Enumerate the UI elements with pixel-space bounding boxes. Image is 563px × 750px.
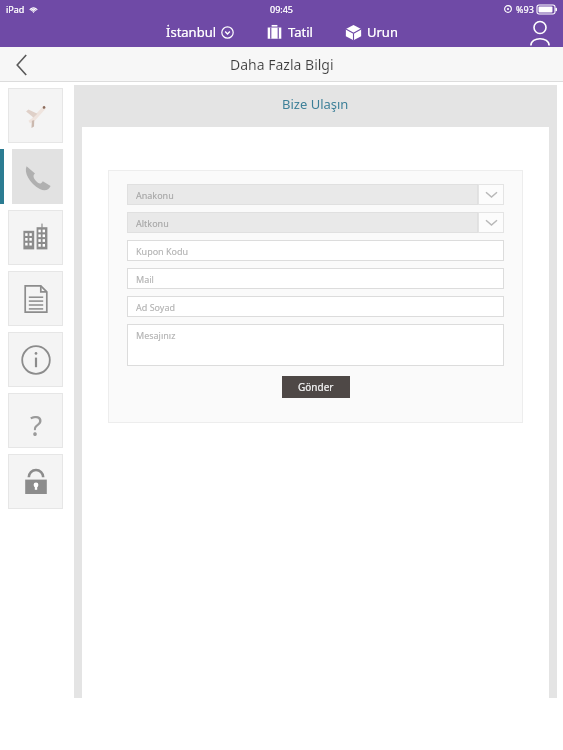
staticText: Kupon Kodu (136, 245, 189, 257)
staticText: Altkonu (136, 217, 169, 229)
staticText: Urun (367, 23, 398, 41)
button[interactable]: Mesajınız (127, 324, 504, 366)
button[interactable]: ? (8, 393, 63, 448)
staticText: 09:45 (270, 3, 294, 15)
staticText: Anakonu (136, 189, 174, 201)
button[interactable]: Gönder (282, 376, 350, 398)
button[interactable]: İstanbul (160, 20, 240, 44)
button[interactable]: Urun (339, 20, 404, 44)
button[interactable] (8, 210, 63, 265)
button[interactable] (8, 332, 63, 387)
button[interactable]: Ad Soyad (127, 296, 504, 317)
staticText: Ad Soyad (136, 301, 176, 313)
staticText: Mesajınız (136, 329, 176, 341)
staticText: %93 (516, 3, 534, 15)
staticText: ? (30, 406, 43, 436)
staticText: Daha Fazla Bilgi (230, 55, 334, 74)
button[interactable] (8, 149, 63, 204)
button[interactable]: Back (0, 47, 44, 82)
staticText: iPad (6, 3, 25, 15)
staticText: İstanbul (166, 23, 217, 41)
button[interactable]: Kupon Kodu (127, 240, 504, 261)
button[interactable] (8, 454, 63, 509)
button[interactable] (8, 271, 63, 326)
button[interactable]: Anakonu (127, 184, 504, 205)
button[interactable]: Account (525, 17, 555, 47)
button[interactable]: Tatil (260, 20, 319, 44)
button[interactable]: Mail (127, 268, 504, 289)
staticText: Tatil (288, 23, 313, 41)
staticText: Mail (136, 273, 154, 285)
staticText: Bize Ulaşın (282, 95, 349, 113)
button[interactable] (8, 88, 63, 143)
staticText: Gönder (298, 380, 334, 394)
button[interactable]: Altkonu (127, 212, 504, 233)
